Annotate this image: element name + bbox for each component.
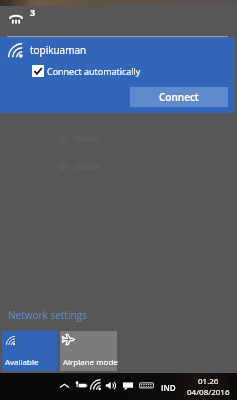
- staticText: Connect automatically: [47, 65, 141, 77]
- staticText: Airplane mode: [63, 356, 118, 367]
- button[interactable]: Keyboard layout: [139, 380, 154, 391]
- staticText: 3: [30, 6, 36, 18]
- staticText: Available: [5, 356, 39, 367]
- button[interactable]: Network: [90, 380, 102, 391]
- button[interactable]: Available: [2, 331, 57, 371]
- staticText: Connect: [159, 90, 199, 104]
- button[interactable]: IND: [161, 382, 176, 393]
- button[interactable]: Action center: [122, 380, 134, 391]
- staticText: 04/08/2016: [187, 386, 230, 397]
- button[interactable]: 01.26: [182, 375, 234, 397]
- button[interactable]: topikuaman: [0, 37, 234, 113]
- button[interactable]: Airplane mode: [60, 331, 117, 371]
- button[interactable]: Battery: [74, 380, 88, 391]
- other: Networks available: [9, 13, 23, 24]
- button[interactable]: Network settings: [8, 308, 87, 322]
- staticText: topikuaman: [30, 43, 87, 57]
- staticText: 01.26: [198, 375, 219, 386]
- button[interactable]: Volume: [105, 380, 118, 391]
- button[interactable]: Show hidden icons: [59, 382, 70, 390]
- button[interactable]: Connect: [130, 87, 228, 107]
